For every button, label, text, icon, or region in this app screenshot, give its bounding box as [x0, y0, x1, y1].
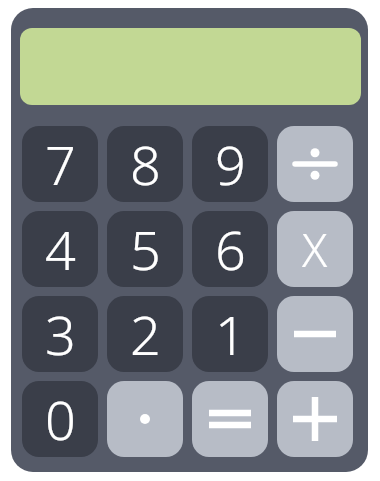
staticText: 0 — [45, 382, 76, 456]
button[interactable]: Plus — [277, 381, 353, 457]
button[interactable]: 8 — [107, 126, 183, 202]
staticText: 4 — [45, 212, 76, 286]
button[interactable]: 2 — [107, 296, 183, 372]
staticText: 3 — [45, 297, 76, 371]
button[interactable]: 1 — [192, 296, 268, 372]
staticText: 9 — [215, 127, 246, 201]
button[interactable]: Decimal point — [107, 381, 183, 457]
button[interactable]: 6 — [192, 211, 268, 287]
button[interactable]: Multiply — [277, 211, 353, 287]
staticText: 2 — [130, 297, 161, 371]
button[interactable]: 5 — [107, 211, 183, 287]
staticText: 6 — [215, 212, 246, 286]
staticText: 8 — [130, 127, 161, 201]
button[interactable]: Minus — [277, 296, 353, 372]
button[interactable]: 9 — [192, 126, 268, 202]
button[interactable]: 0 — [22, 381, 98, 457]
button[interactable]: Divide — [277, 126, 353, 202]
staticText: 1 — [215, 297, 246, 371]
staticText: 5 — [130, 212, 161, 286]
staticText: X — [302, 218, 328, 281]
staticText: 7 — [45, 127, 76, 201]
button[interactable]: 4 — [22, 211, 98, 287]
button[interactable]: 3 — [22, 296, 98, 372]
button[interactable]: Equals — [192, 381, 268, 457]
button[interactable]: 7 — [22, 126, 98, 202]
